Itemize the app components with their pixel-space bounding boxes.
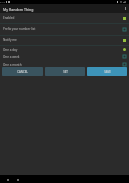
button[interactable]: Toggle option	[122, 54, 127, 59]
staticText: 5:18	[0, 0, 5, 3]
staticText: One a month	[3, 63, 122, 67]
button[interactable]: One a month	[0, 61, 129, 68]
staticText: Notify me	[3, 38, 122, 42]
staticText: Prefix your number list	[3, 27, 122, 31]
button[interactable]: One a week	[0, 53, 129, 60]
button[interactable]: Home	[14, 175, 21, 183]
staticText: One a day	[3, 48, 122, 52]
button[interactable]: More options	[122, 4, 129, 13]
staticText: Enabled	[3, 16, 122, 20]
staticText: My Random Thing	[3, 7, 34, 12]
button[interactable]: Prefix your number list	[0, 23, 129, 35]
staticText: SAVE	[104, 70, 111, 74]
button[interactable]: Enabled	[0, 13, 129, 23]
staticText: SET	[63, 70, 68, 74]
button[interactable]: Toggle option	[122, 38, 127, 43]
button[interactable]: SAVE	[87, 67, 127, 76]
button[interactable]: Toggle option	[122, 16, 127, 21]
staticText: CANCEL	[17, 70, 28, 74]
button[interactable]: Toggle option	[122, 62, 127, 67]
button[interactable]: SET	[45, 67, 85, 76]
staticText: One a week	[3, 55, 122, 59]
button[interactable]: CANCEL	[2, 67, 43, 76]
button[interactable]: Back	[4, 175, 11, 183]
button[interactable]: Notify me	[0, 35, 129, 45]
button[interactable]: Toggle option	[122, 47, 127, 52]
button[interactable]: Toggle option	[122, 27, 127, 32]
button[interactable]: One a day	[0, 46, 129, 53]
